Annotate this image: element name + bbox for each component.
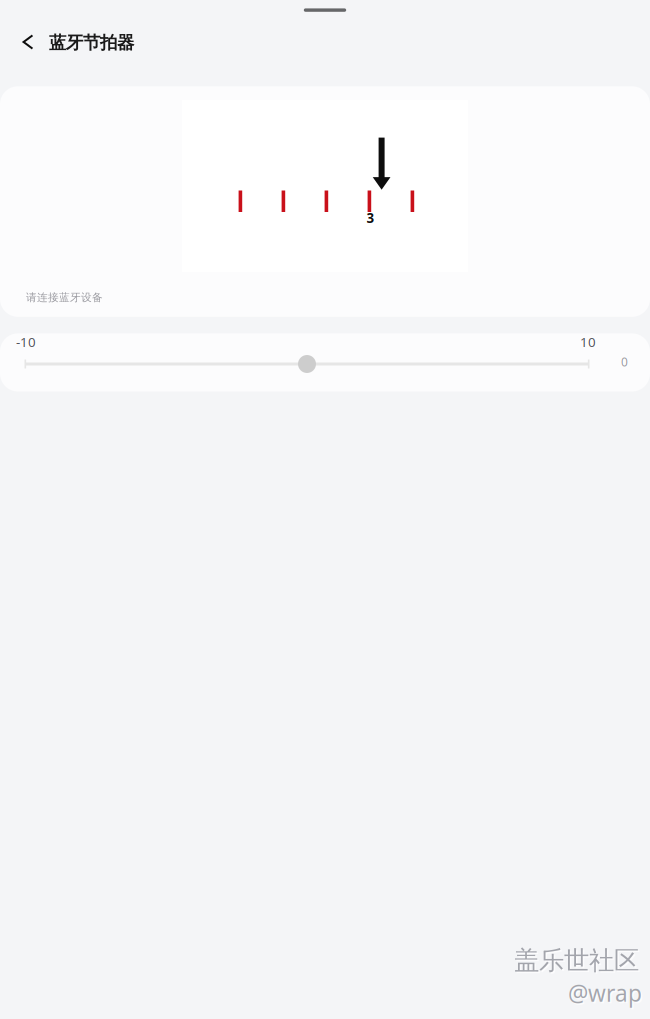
button[interactable]: Back xyxy=(6,20,50,64)
staticText: @wrap xyxy=(569,979,643,1010)
staticText: -10 xyxy=(16,333,36,351)
staticText: 盖乐世社区 xyxy=(515,946,640,978)
button[interactable]: 校准偏移 0 xyxy=(298,355,316,373)
staticText: 盖乐世社区 xyxy=(514,945,639,976)
staticText: @wrap xyxy=(568,978,642,1008)
staticText: 10 xyxy=(580,333,596,351)
staticText: 请连接蓝牙设备 xyxy=(26,291,103,304)
staticText: 0 xyxy=(621,354,628,370)
staticText: 蓝牙节拍器 xyxy=(49,32,134,53)
staticText: 3 xyxy=(366,209,374,227)
